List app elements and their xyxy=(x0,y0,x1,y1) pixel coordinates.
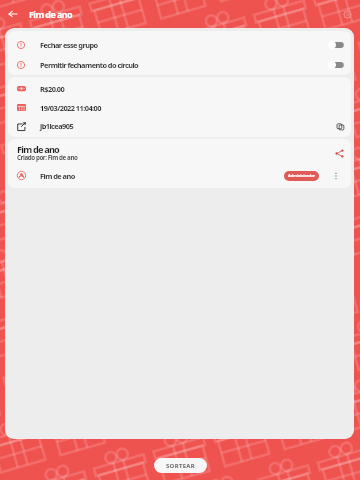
button[interactable]: Fechar esse grupo xyxy=(8,35,351,55)
button[interactable]: Administrador xyxy=(284,171,319,181)
button[interactable]: SORTEAR xyxy=(154,458,207,473)
staticText: jb1lcea905 xyxy=(40,121,74,131)
staticText: Administrador xyxy=(288,173,315,179)
staticText: Fechar esse grupo xyxy=(40,40,98,50)
staticText: Fim de ano xyxy=(29,8,73,20)
button[interactable]: jb1lcea905 xyxy=(8,117,351,135)
staticText: 19/03/2022 11:04:00 xyxy=(40,103,101,113)
button[interactable]: 19/03/2022 11:04:00 xyxy=(8,98,351,117)
button[interactable]: R$20.00 xyxy=(8,79,351,98)
button[interactable]: Fim de ano xyxy=(8,165,351,186)
staticText: Fim de ano xyxy=(17,143,60,156)
staticText: Fim de ano xyxy=(40,171,75,181)
button[interactable]: Share xyxy=(330,144,348,162)
staticText: R$20.00 xyxy=(40,84,65,94)
staticText: Permitir fechamento do círculo xyxy=(40,60,139,70)
button[interactable]: Back xyxy=(2,3,23,24)
button[interactable]: Settings xyxy=(337,4,357,24)
staticText: SORTEAR xyxy=(166,462,195,470)
button[interactable]: Permitir fechamento do círculo xyxy=(8,55,351,75)
staticText: Criado por: Fim de ano xyxy=(17,153,78,161)
button[interactable]: Copy code xyxy=(332,118,348,134)
button[interactable]: More options xyxy=(329,169,343,183)
